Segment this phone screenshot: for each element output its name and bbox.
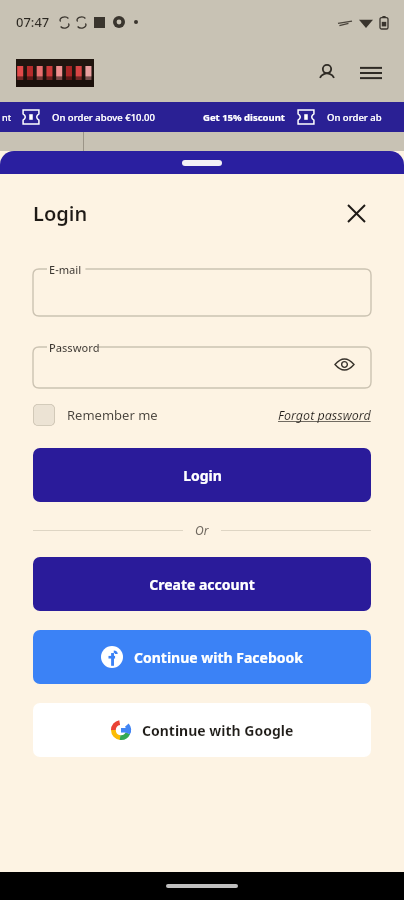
button[interactable]: Show password xyxy=(331,351,357,377)
staticText: 07:47 xyxy=(16,13,50,31)
staticText: Continue with Google xyxy=(142,721,294,740)
staticText: Continue with Facebook xyxy=(134,648,303,667)
button[interactable]: Continue with Google xyxy=(33,703,371,757)
button[interactable]: E-mail xyxy=(33,262,371,316)
button[interactable]: Remember me xyxy=(33,404,158,426)
button[interactable]: Menu xyxy=(354,56,388,90)
staticText: Login xyxy=(33,200,88,227)
staticText: Or xyxy=(195,522,209,538)
staticText: nt xyxy=(2,111,12,123)
staticText: E-mail xyxy=(49,262,82,277)
staticText: Password xyxy=(49,340,100,355)
staticText: Login xyxy=(183,466,222,485)
button[interactable]: Login xyxy=(33,448,371,502)
button[interactable]: Password xyxy=(33,340,371,388)
staticText: Create account xyxy=(149,575,255,594)
staticText: On order above €10.00 xyxy=(52,111,155,124)
staticText: Get 15% discount xyxy=(203,111,285,124)
button[interactable]: Forgot password xyxy=(278,407,371,424)
staticText: Remember me xyxy=(67,406,158,424)
button[interactable]: Account xyxy=(310,56,344,90)
button[interactable]: Continue with Facebook xyxy=(33,630,371,684)
staticText: On order ab xyxy=(327,111,382,124)
button[interactable]: Create account xyxy=(33,557,371,611)
button[interactable]: Close xyxy=(341,198,371,228)
staticText: Forgot password xyxy=(278,407,371,424)
